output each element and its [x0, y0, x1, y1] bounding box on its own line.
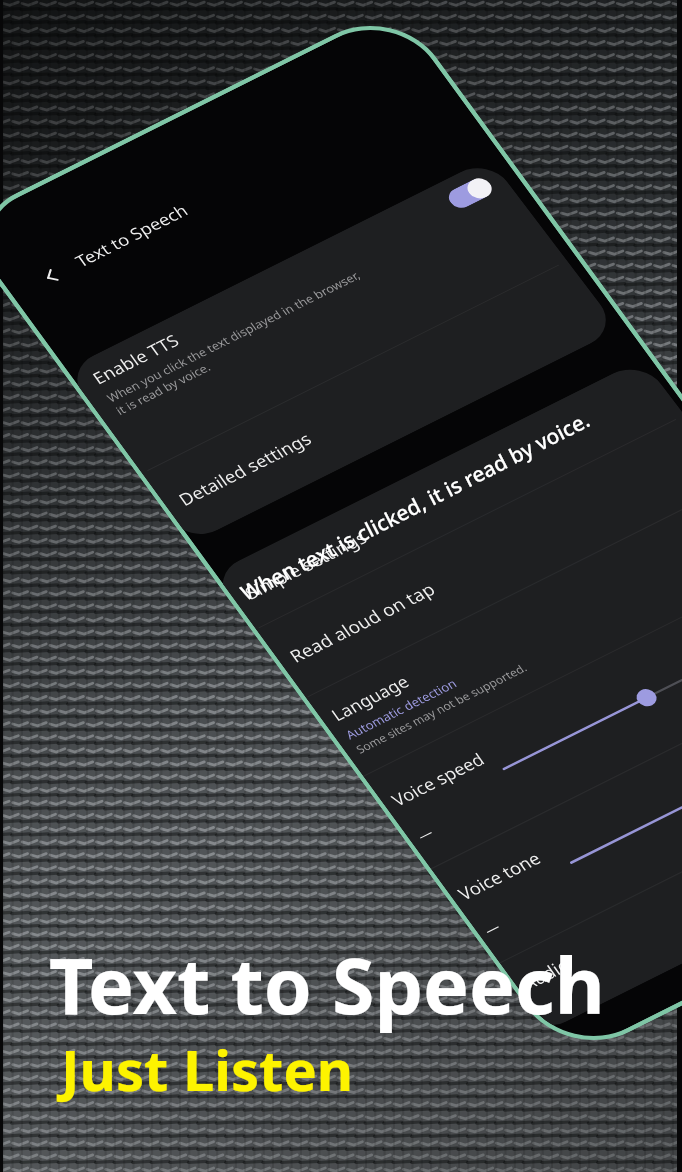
button[interactable]: Back — [0, 0, 460, 387]
staticText: Detailed settings — [170, 405, 320, 533]
staticText: Simple settings — [236, 506, 375, 625]
staticText: Automatic detection — [340, 657, 463, 761]
staticText: Some sites may not be supported. — [350, 631, 532, 785]
button[interactable]: Detailed settings — [131, 188, 630, 614]
staticText: — — [477, 915, 506, 941]
staticText: Voice tone — [450, 833, 550, 919]
staticText: — — [411, 821, 439, 847]
staticText: Read aloud on tap — [281, 553, 443, 692]
button[interactable]: Voice speed — [349, 487, 682, 941]
staticText: When you click the text displayed in the… — [99, 225, 377, 461]
staticText: When text is clicked, it is read by voic… — [236, 405, 595, 607]
button[interactable]: Audio — [492, 673, 682, 1087]
button[interactable]: Enable TTS toggle — [440, 165, 502, 220]
button[interactable]: Back — [19, 248, 83, 305]
staticText: Enable TTS — [84, 315, 187, 403]
button[interactable]: Language — [294, 409, 682, 849]
button[interactable]: Read aloud on tap — [245, 342, 682, 770]
staticText: Text to Speech — [49, 932, 605, 1037]
staticText: Voice speed — [383, 733, 493, 827]
button[interactable]: Enable TTS — [49, 85, 584, 545]
button[interactable]: Simple settings — [206, 286, 682, 701]
button[interactable]: Voice tone — [416, 579, 682, 1036]
staticText: Text to Speech — [67, 181, 196, 290]
staticText: Language — [323, 657, 418, 739]
staticText: Audio — [513, 945, 579, 1003]
staticText: Just Listen — [61, 1031, 354, 1107]
